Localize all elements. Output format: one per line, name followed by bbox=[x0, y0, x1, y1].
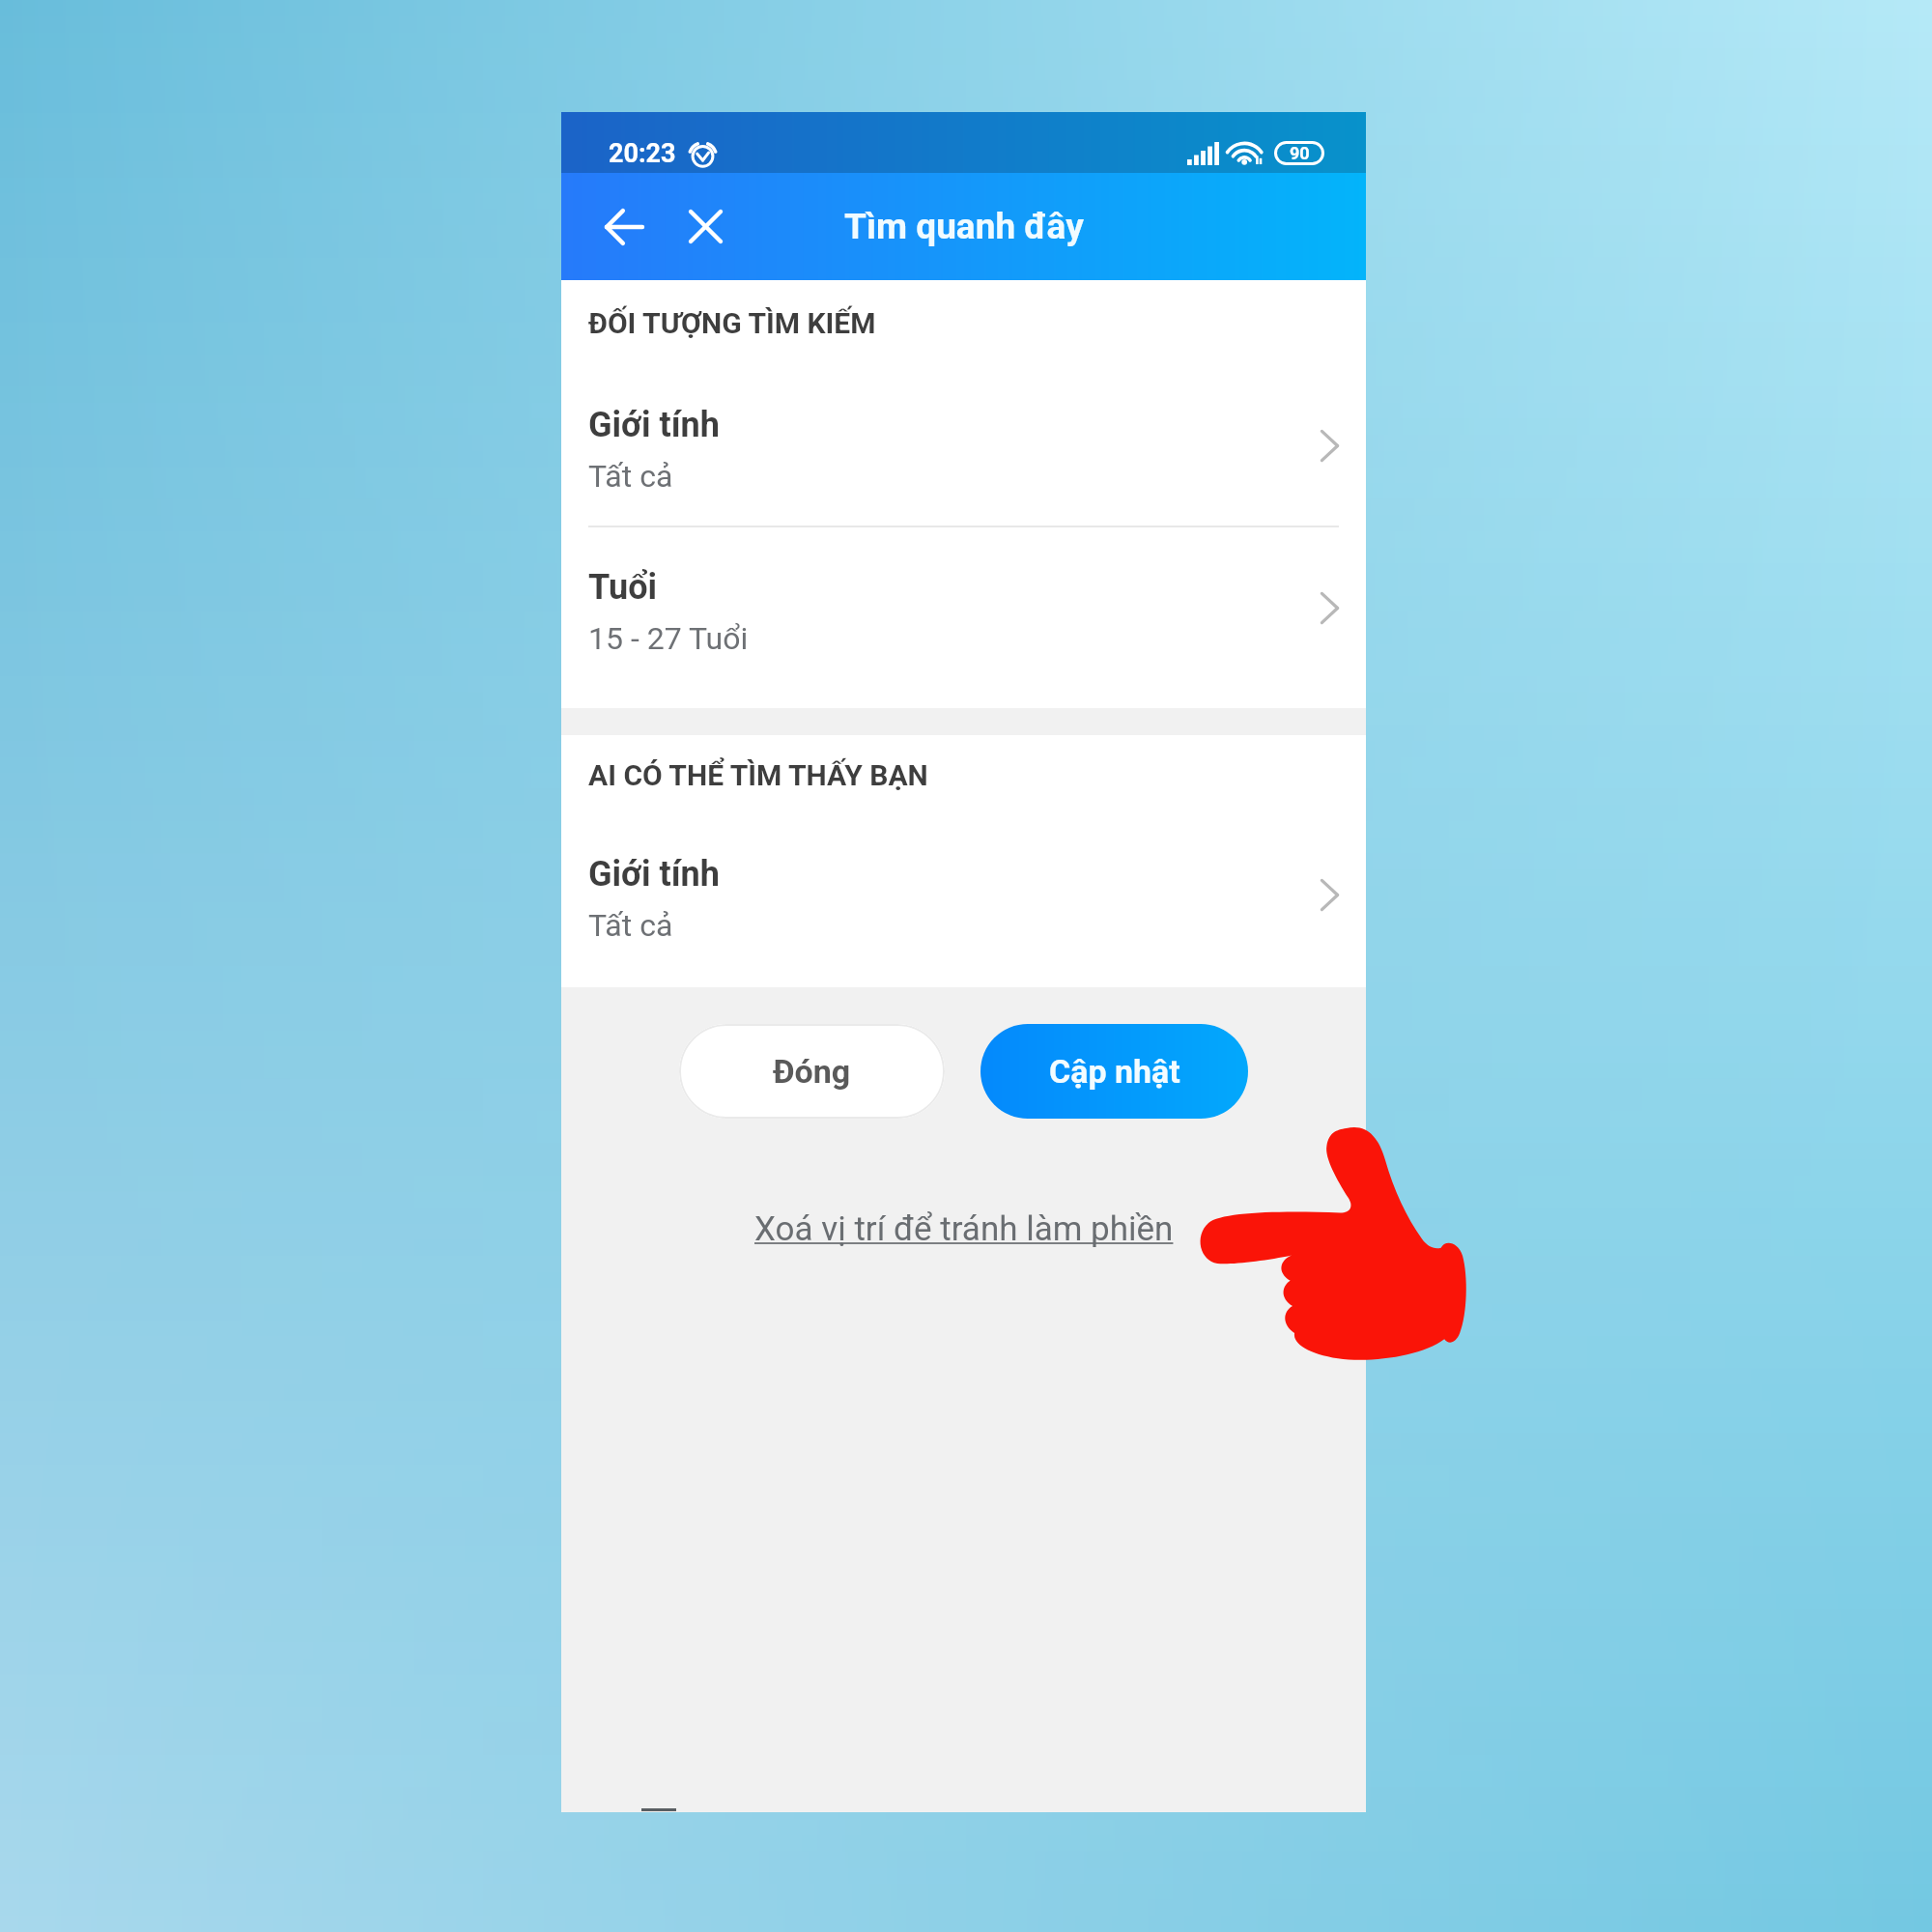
button[interactable]: Close bbox=[668, 173, 744, 280]
staticText: Tìm quanh đây bbox=[844, 206, 1084, 247]
button[interactable]: Đóng bbox=[679, 1024, 945, 1119]
button[interactable]: Cập nhật bbox=[980, 1024, 1248, 1119]
staticText: Đóng bbox=[773, 1052, 851, 1091]
button[interactable]: Giới tính bbox=[561, 365, 1366, 526]
staticText: Giới tính bbox=[588, 405, 720, 445]
staticText: Tuổi bbox=[588, 567, 658, 608]
staticText: 90 bbox=[1290, 143, 1310, 163]
staticText: Tất cả bbox=[588, 907, 673, 944]
button[interactable]: Back bbox=[581, 173, 668, 280]
staticText: 20:23 bbox=[609, 138, 676, 169]
staticText: Cập nhật bbox=[1049, 1052, 1180, 1091]
button[interactable]: Giới tính bbox=[561, 814, 1366, 975]
staticText: Giới tính bbox=[588, 854, 720, 895]
staticText: Tất cả bbox=[588, 458, 673, 495]
button[interactable]: Xoá vị trí để tránh làm phiền bbox=[731, 1192, 1197, 1266]
staticText: AI CÓ THỂ TÌM THẤY BẠN bbox=[588, 758, 928, 792]
staticText: Xoá vị trí để tránh làm phiền bbox=[754, 1209, 1174, 1249]
staticText: 15 - 27 Tuổi bbox=[588, 620, 749, 657]
button[interactable]: Tuổi bbox=[561, 527, 1366, 688]
staticText: ĐỐI TƯỢNG TÌM KIẾM bbox=[588, 306, 876, 340]
